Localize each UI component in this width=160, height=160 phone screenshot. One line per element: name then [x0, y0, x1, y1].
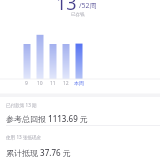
staticText: 13	[56, 0, 77, 16]
staticText: 12	[63, 80, 69, 87]
staticText: 已付款第 13 期	[6, 102, 37, 108]
staticText: /52周	[79, 1, 97, 11]
staticText: 11	[50, 80, 56, 87]
staticText: 9	[25, 80, 28, 87]
staticText: 已存钱	[71, 12, 85, 18]
staticText: 本周	[74, 80, 84, 86]
staticText: 10	[37, 80, 43, 87]
staticText: 参考总回报 1113.69 元	[6, 113, 88, 124]
staticText: 累计抵现 37.76 元	[6, 147, 71, 158]
staticText: 使用 13 张抵现金	[6, 134, 42, 140]
